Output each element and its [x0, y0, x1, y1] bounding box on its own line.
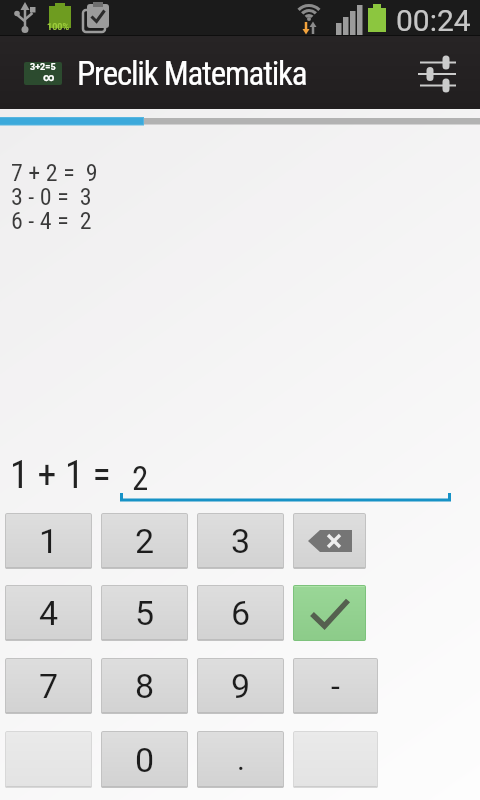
button[interactable]: 2 [101, 513, 188, 569]
staticText: 00:24 [396, 3, 471, 38]
staticText: 3+2=5 [30, 62, 56, 73]
button[interactable] [293, 513, 366, 569]
button[interactable]: 0 [101, 731, 188, 788]
button[interactable]: 2 [118, 455, 453, 503]
staticText: 8 [135, 666, 155, 706]
button[interactable]: . [197, 731, 284, 788]
staticText: 2 [135, 521, 155, 561]
staticText: 3 [231, 521, 251, 561]
staticText: . [237, 742, 245, 777]
button[interactable]: 1 [5, 513, 92, 569]
staticText: 6 [231, 593, 251, 633]
staticText: 0 [135, 740, 155, 780]
button[interactable]: 9 [197, 658, 284, 714]
button[interactable] [404, 46, 472, 100]
staticText: 2 [132, 459, 149, 498]
button[interactable] [293, 585, 366, 641]
button[interactable]: 3 [197, 513, 284, 569]
staticText: 9 [231, 666, 251, 706]
staticText: ∞ [43, 71, 55, 84]
button[interactable] [5, 731, 92, 788]
staticText: 7 [39, 666, 59, 706]
button[interactable] [293, 731, 378, 788]
button[interactable]: 8 [101, 658, 188, 714]
staticText: 1 [39, 521, 59, 561]
button[interactable]: 5 [101, 585, 188, 641]
staticText: - [331, 667, 340, 705]
staticText: 100% [47, 22, 70, 33]
button[interactable]: 4 [5, 585, 92, 641]
button[interactable]: 7 [5, 658, 92, 714]
button[interactable]: 6 [197, 585, 284, 641]
staticText: Preclik Matematika [77, 54, 307, 93]
staticText: 5 [135, 593, 155, 633]
staticText: 7 + 2 = 9 3 - 0 = 3 6 - 4 = 2 [11, 159, 98, 235]
staticText: 4 [39, 593, 59, 633]
button[interactable]: - [293, 658, 378, 714]
staticText: 1 + 1 = [10, 453, 111, 498]
